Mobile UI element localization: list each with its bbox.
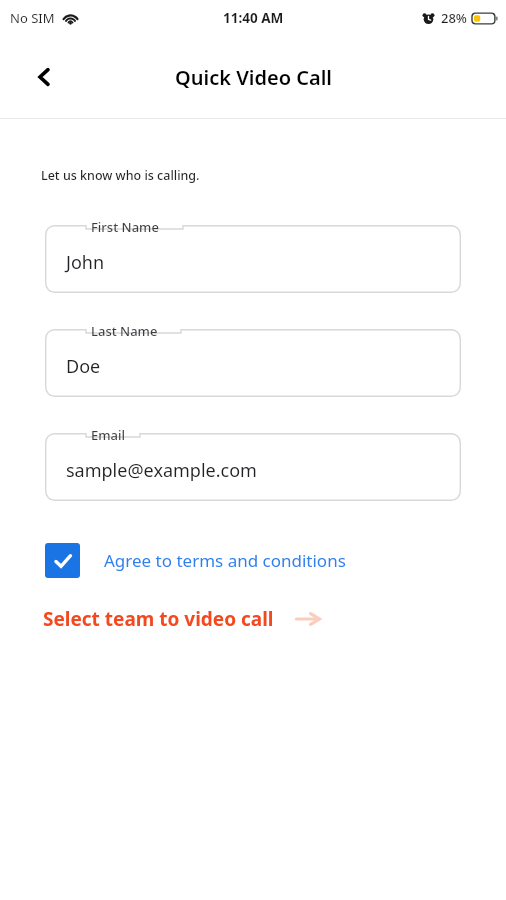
staticText: Last Name [91,322,158,340]
button[interactable]: Agree to terms and conditions [45,543,346,578]
staticText: No SIM [10,9,55,27]
staticText: 11:40 AM [223,9,284,27]
staticText: John [66,250,105,275]
button[interactable]: Email [45,433,461,501]
staticText: Let us know who is calling. [41,167,200,184]
button[interactable]: Last Name [45,329,461,397]
button[interactable]: Select team to video call [43,606,321,632]
staticText: Select team to video call [43,606,274,632]
staticText: Quick Video Call [175,64,332,91]
staticText: sample@example.com [66,458,257,483]
staticText: Doe [66,354,101,379]
staticText: First Name [91,218,159,236]
button[interactable]: First Name [45,225,461,293]
staticText: Email [91,426,126,444]
button[interactable]: Back [22,55,66,99]
staticText: 28% [441,9,467,27]
staticText: Agree to terms and conditions [104,549,346,572]
